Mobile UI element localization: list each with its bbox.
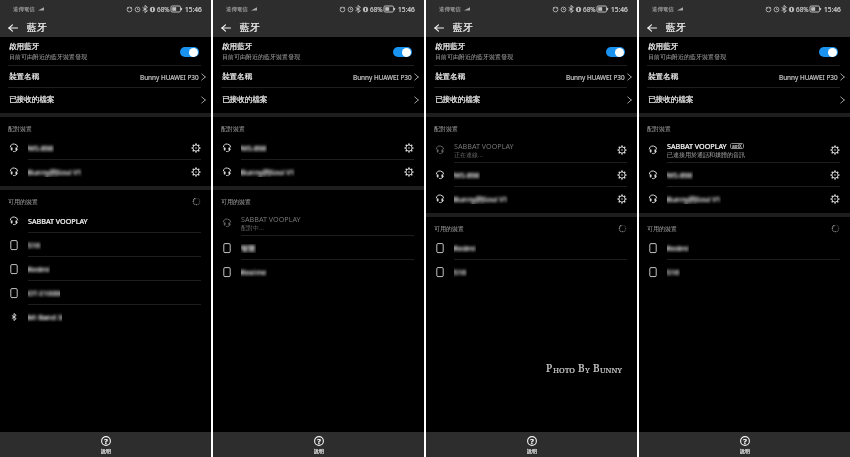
button[interactable]: SABBAT VOOPLAY [213,209,424,236]
button[interactable]: ? [213,432,424,457]
button[interactable]: 啟用藍牙 [0,37,211,66]
staticText: 說明 [101,448,111,454]
button[interactable]: Realme [213,260,424,284]
button[interactable]: Device settings [614,191,630,207]
staticText: ? [743,436,747,446]
staticText: 已連接用於通話和媒體的音訊 [667,151,745,159]
staticText: 配對裝置 [647,125,671,133]
button[interactable]: Redmi [426,236,637,260]
button[interactable]: Device settings [401,164,417,180]
staticText: HOTO [553,365,575,375]
button[interactable]: WS-898 [213,136,424,160]
button[interactable]: SABBAT VOOPLAY [0,209,211,233]
staticText: 裝置名稱 [222,72,253,82]
staticText: Bunny HUAWEI P30 [779,73,838,82]
button[interactable]: WS-898 [426,163,637,187]
button[interactable]: 啟用藍牙 [213,37,424,66]
staticText: OT-E1000 [28,288,60,298]
staticText: Bunny的Soul V1 [454,194,508,204]
button[interactable]: Mi Band 3 [0,305,211,329]
button[interactable]: Redmi [0,257,211,281]
button[interactable]: Redmi [639,236,850,260]
button[interactable]: Device settings [827,142,843,158]
staticText: S16 [667,267,680,277]
staticText: WS-898 [667,170,693,180]
button[interactable]: Back [431,20,447,36]
staticText: 遠傳電信 [652,6,674,13]
staticText: ? [530,436,534,446]
staticText: 已接收的檔案 [435,95,481,105]
staticText: 15:46 [824,5,841,14]
button[interactable]: Back [5,20,21,36]
button[interactable]: 已接收的檔案 [426,88,637,111]
button[interactable]: Device settings [188,164,204,180]
button[interactable]: Bunny的Soul V1 [0,160,211,184]
button[interactable]: Bunny的Soul V1 [639,187,850,211]
staticText: SABBAT VOOPLAY [241,214,301,224]
staticText: 可用的裝置 [434,225,464,233]
staticText: 可用的裝置 [8,198,38,206]
staticText: 目前可由附近的藍牙裝置發現 [435,53,513,61]
button[interactable]: 已接收的檔案 [639,88,850,111]
button[interactable]: Back [218,20,234,36]
staticText: Bunny的Soul V1 [241,167,295,177]
button[interactable]: 已接收的檔案 [213,88,424,111]
staticText: 遠傳電信 [13,6,35,13]
staticText: 藍牙 [453,22,473,34]
button[interactable]: Device settings [827,191,843,207]
staticText: 已接收的檔案 [222,95,268,105]
button[interactable]: S16 [0,233,211,257]
button[interactable]: Back [644,20,660,36]
button[interactable]: 裝置名稱 [213,66,424,88]
staticText: Redmi [454,243,476,253]
button[interactable]: SABBAT VOOPLAY [639,136,850,163]
staticText: P [546,361,553,375]
button[interactable]: Device settings [614,142,630,158]
staticText: 目前可由附近的藍牙裝置發現 [222,53,300,61]
staticText: Redmi [667,243,689,253]
staticText: B [578,361,585,375]
staticText: Bunny HUAWEI P30 [140,73,199,82]
button[interactable]: 智慧 [213,236,424,260]
staticText: 藍牙 [27,22,47,34]
staticText: S16 [454,267,467,277]
button[interactable]: 裝置名稱 [0,66,211,88]
staticText: SABBAT VOOPLAY [667,141,727,151]
button[interactable]: Device settings [827,167,843,183]
button[interactable]: ? [639,432,850,457]
button[interactable]: ? [0,432,211,457]
staticText: 可用的裝置 [647,225,677,233]
button[interactable]: SABBAT VOOPLAY [426,136,637,163]
staticText: 68% [796,5,809,14]
button[interactable]: 裝置名稱 [639,66,850,88]
staticText: 啟用藍牙 [435,42,466,52]
button[interactable]: Device settings [401,140,417,156]
staticText: ? [104,436,108,446]
staticText: 配對裝置 [221,125,245,133]
button[interactable]: 啟用藍牙 [426,37,637,66]
button[interactable]: Device settings [188,140,204,156]
button[interactable]: S16 [426,260,637,284]
button[interactable]: 已接收的檔案 [0,88,211,111]
button[interactable]: 裝置名稱 [426,66,637,88]
staticText: 裝置名稱 [648,72,679,82]
staticText: 15:46 [611,5,628,14]
staticText: SABBAT VOOPLAY [28,216,88,226]
button[interactable]: S16 [639,260,850,284]
button[interactable]: 啟用藍牙 [639,37,850,66]
button[interactable]: ? [426,432,637,457]
button[interactable]: Bunny的Soul V1 [213,160,424,184]
staticText: ? [317,436,321,446]
staticText: WS-898 [28,143,54,153]
staticText: SABBAT VOOPLAY [454,141,514,151]
staticText: UNNY [600,365,623,375]
button[interactable]: Bunny的Soul V1 [426,187,637,211]
staticText: 說明 [740,448,750,454]
button[interactable]: Device settings [614,167,630,183]
staticText: 智慧 [241,244,256,253]
staticText: WS-898 [454,170,480,180]
button[interactable]: WS-898 [0,136,211,160]
button[interactable]: OT-E1000 [0,281,211,305]
staticText: 目前可由附近的藍牙裝置發現 [648,53,726,61]
button[interactable]: WS-898 [639,163,850,187]
